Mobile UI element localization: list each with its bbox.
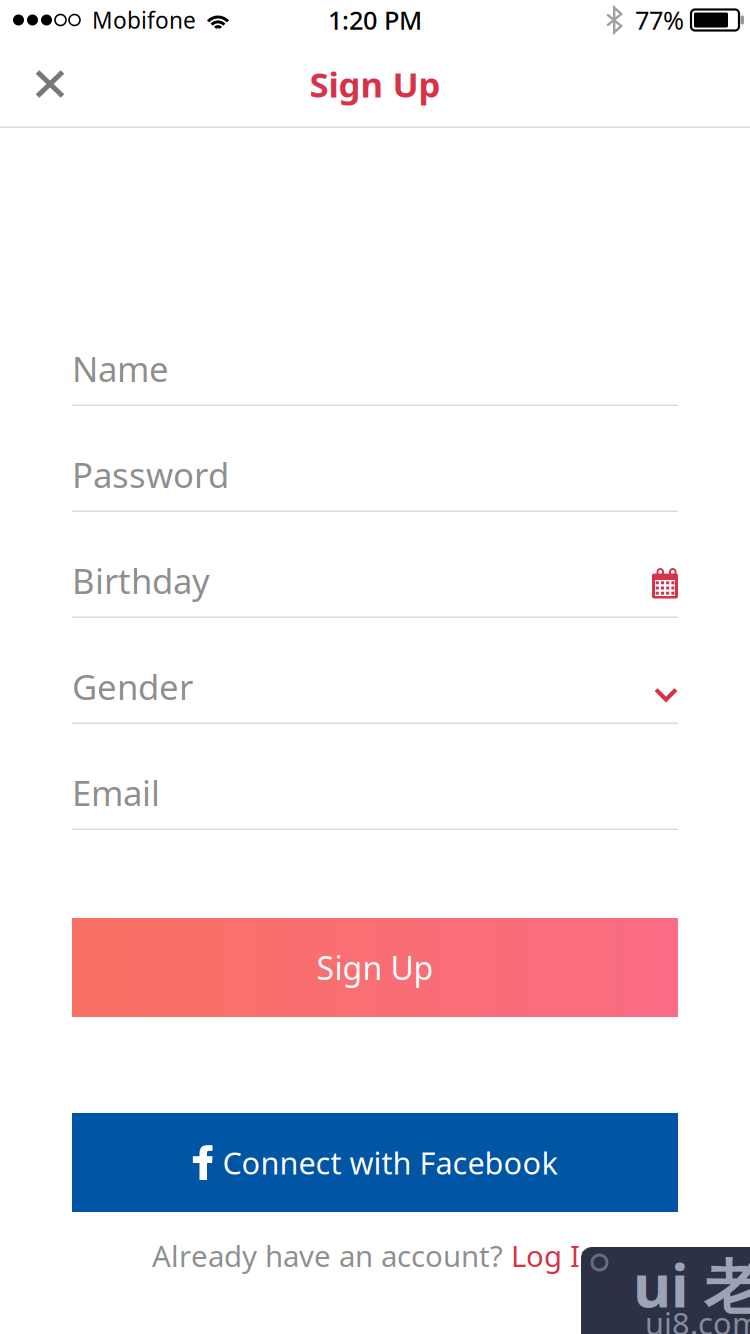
button[interactable]: Gender [72, 618, 678, 724]
staticText: Gender [72, 663, 193, 709]
staticText: Name [72, 345, 169, 391]
staticText: Sign Up [316, 946, 433, 989]
staticText: ui8.com [645, 1303, 750, 1334]
staticText: 77% [635, 3, 684, 37]
button[interactable]: Email [72, 724, 678, 830]
staticText: Email [72, 769, 160, 815]
button[interactable]: Log In [503, 1236, 598, 1275]
button[interactable]: Connect with Facebook [72, 1113, 678, 1212]
staticText: ui 老爸 [633, 1246, 750, 1324]
staticText: Mobifone [92, 5, 196, 35]
button[interactable]: Password [72, 406, 678, 512]
staticText: Log In [503, 1236, 598, 1275]
staticText: Already have an account? [152, 1236, 503, 1275]
staticText: Birthday [72, 557, 210, 603]
button[interactable]: Sign Up [72, 918, 678, 1017]
button[interactable]: Birthday [72, 512, 678, 618]
staticText: Connect with Facebook [222, 1142, 557, 1183]
button[interactable]: Name [72, 300, 678, 406]
staticText: 1:20 PM [328, 3, 422, 37]
staticText: Password [72, 451, 229, 497]
staticText: Sign Up [309, 61, 440, 107]
button[interactable]: Close [0, 40, 90, 127]
